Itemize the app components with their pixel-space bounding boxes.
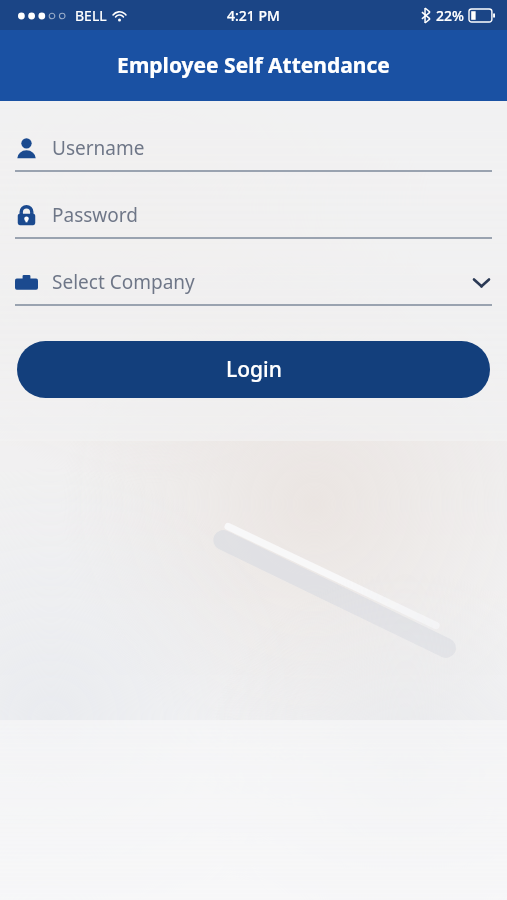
staticText: Username: [52, 135, 145, 161]
staticText: BELL: [75, 6, 107, 25]
staticText: Password: [52, 202, 138, 228]
staticText: Select Company: [52, 269, 195, 295]
staticText: Login: [226, 355, 282, 384]
other: Username: [15, 137, 38, 160]
staticText: 4:21 PM: [227, 6, 280, 25]
button[interactable]: Username: [15, 131, 492, 172]
button[interactable]: Password: [15, 198, 492, 239]
other: Open company list: [470, 271, 492, 293]
button[interactable]: Select company: [15, 265, 492, 306]
staticText: Employee Self Attendance: [117, 51, 390, 80]
button[interactable]: Login: [17, 341, 490, 398]
other: Select company: [15, 271, 38, 294]
other: Password: [15, 204, 38, 227]
staticText: 22%: [436, 6, 464, 25]
